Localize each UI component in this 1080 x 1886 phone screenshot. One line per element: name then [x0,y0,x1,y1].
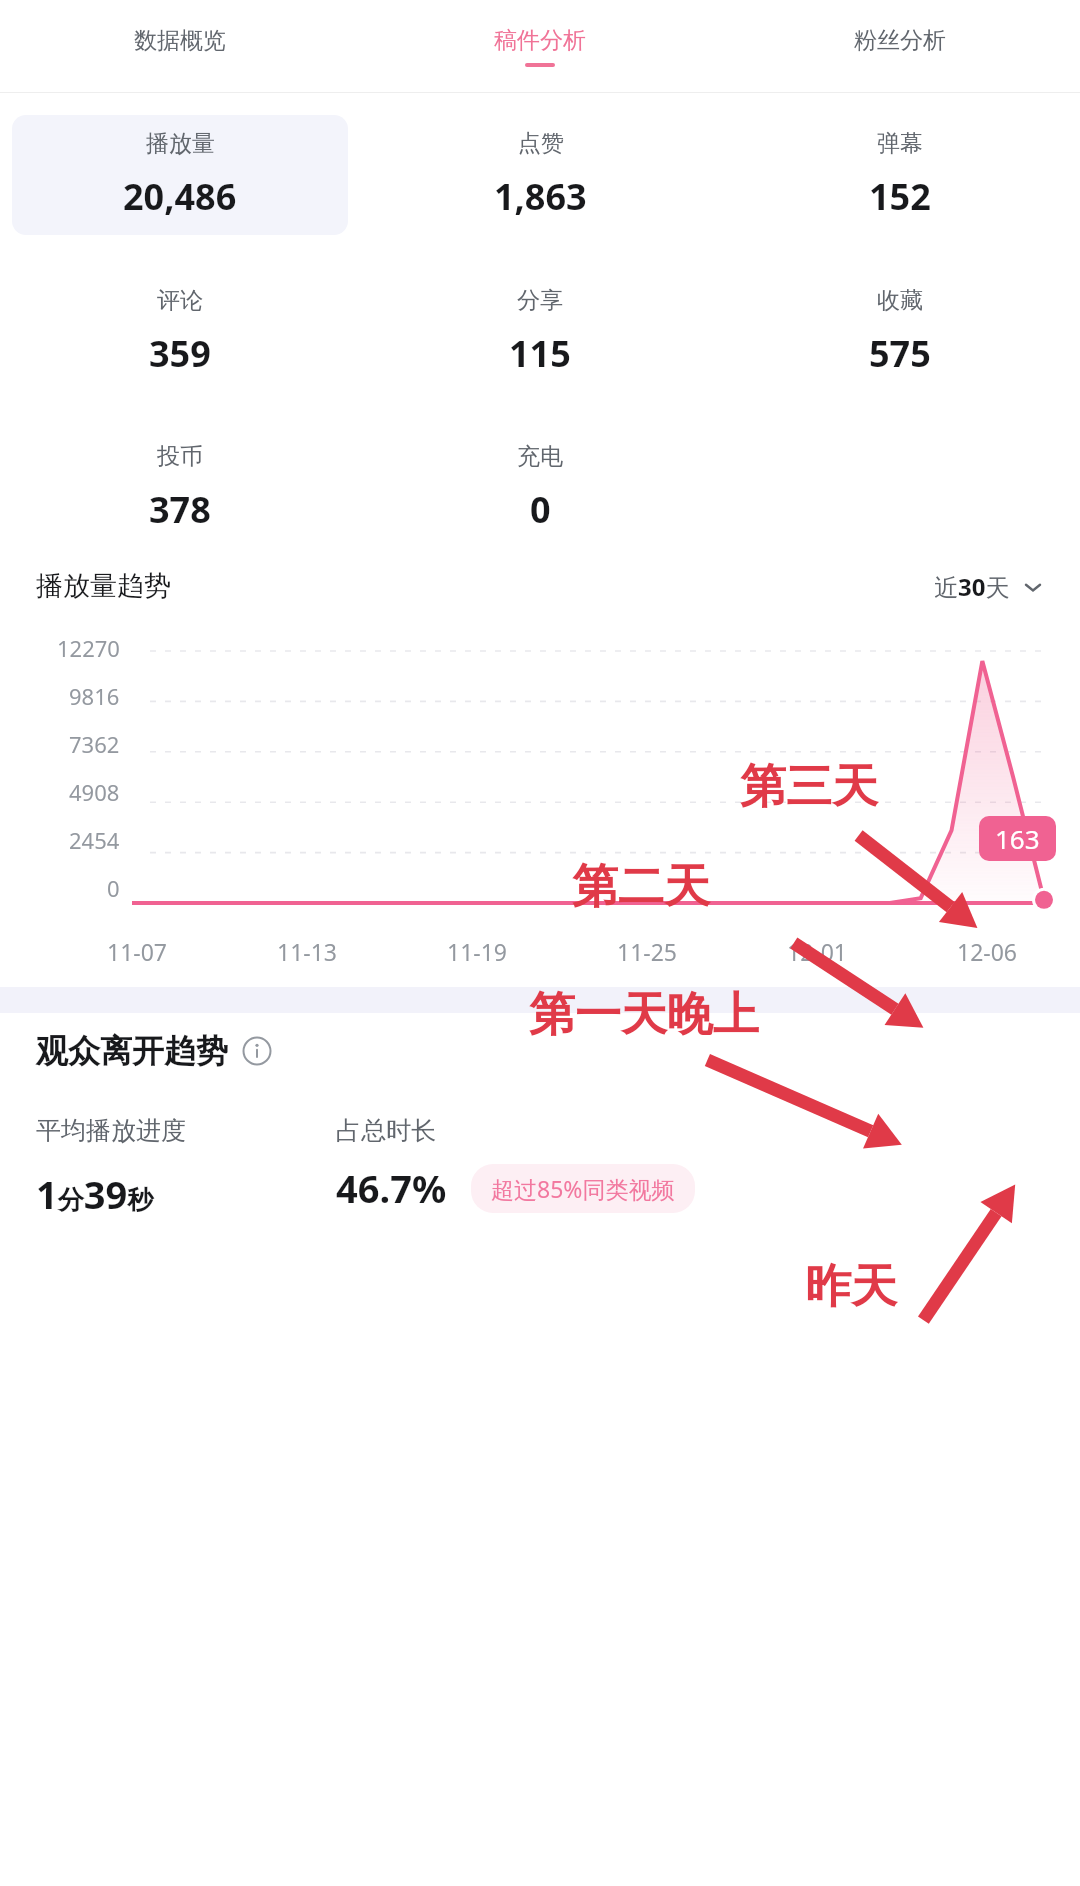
staticText: 0 [107,873,120,903]
staticText: 2454 [69,825,120,855]
staticText: 12-01 [787,936,848,967]
staticText: 数据概览 [134,26,226,55]
button[interactable]: 播放量 [12,115,348,235]
button[interactable]: 充电 [360,429,720,547]
button[interactable]: 数据概览 [0,0,360,92]
staticText: 4908 [69,777,120,807]
staticText: 弹幕 [877,129,923,158]
staticText: 第二天 [572,858,710,916]
staticText: 平均播放进度 [36,1115,186,1146]
staticText: 115 [509,329,571,378]
staticText: 12270 [57,633,120,663]
staticText: 充电 [517,442,563,471]
staticText: 收藏 [877,286,923,315]
button[interactable]: 评论 [0,273,360,391]
staticText: 11-25 [617,936,678,967]
staticText: 占总时长 [336,1115,436,1146]
button[interactable]: 点赞 [360,115,720,235]
staticText: 152 [869,172,931,221]
staticText: 11-19 [447,936,508,967]
staticText: 11-07 [107,936,168,967]
staticText: 378 [149,485,211,534]
staticText: 播放量 [146,129,215,158]
button[interactable]: 分享 [360,273,720,391]
staticText: 粉丝分析 [854,26,946,55]
button[interactable]: 近30天 [934,570,1044,603]
staticText: 9816 [69,681,120,711]
staticText: 163 [995,821,1040,856]
staticText: 点赞 [518,129,564,158]
staticText: 46.7% [336,1162,447,1214]
button[interactable]: 收藏 [720,273,1080,391]
staticText: 0 [530,485,551,534]
button[interactable]: 投币 [0,429,360,547]
staticText: 播放量趋势 [36,569,171,603]
staticText: 12-06 [957,936,1018,967]
button[interactable]: 说明 [242,1036,272,1066]
staticText: 575 [869,329,931,378]
button[interactable]: 稿件分析 [360,0,720,92]
staticText: 稿件分析 [494,26,586,55]
staticText: 1分39秒 [36,1168,154,1220]
staticText: 20,486 [123,172,237,221]
staticText: 第一天晚上 [529,986,759,1044]
staticText: 投币 [157,442,203,471]
staticText: 7362 [69,729,120,759]
staticText: 1,863 [494,172,587,221]
staticText: 第三天 [740,758,878,816]
staticText: 评论 [157,286,203,315]
staticText: 昨天 [805,1258,897,1316]
staticText: 分享 [517,286,563,315]
staticText: 超过85%同类视频 [491,1173,675,1204]
staticText: 11-13 [277,936,338,967]
staticText: 359 [149,329,211,378]
staticText: 观众离开趋势 [36,1031,228,1071]
button[interactable]: 弹幕 [720,115,1080,235]
button[interactable]: 粉丝分析 [720,0,1080,92]
staticText: 近30天 [934,570,1010,603]
